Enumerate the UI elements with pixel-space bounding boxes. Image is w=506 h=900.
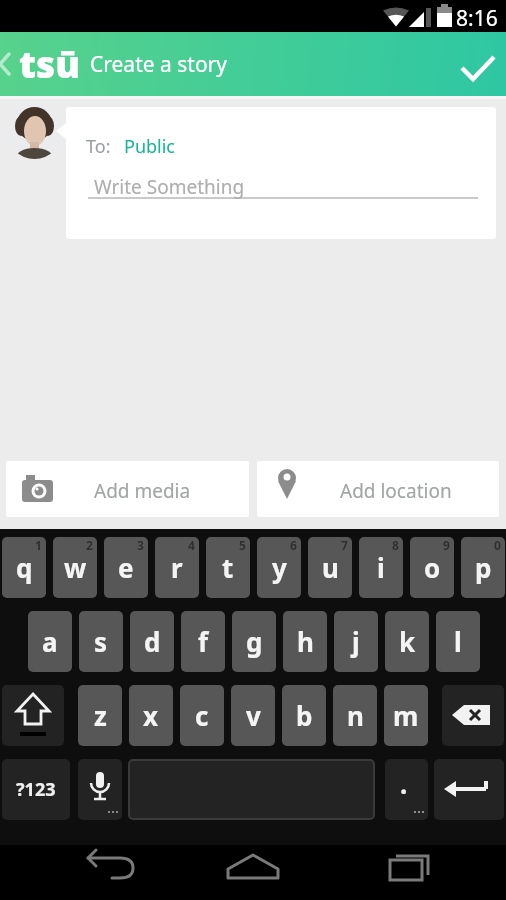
button[interactable]: p [461, 537, 505, 598]
staticText: p [475, 550, 492, 585]
button[interactable] [434, 759, 504, 820]
staticText: 4 [188, 537, 195, 553]
staticText: tsū [19, 38, 80, 88]
staticText: 8 [392, 537, 399, 553]
staticText: x [143, 698, 159, 733]
staticText: Public [124, 134, 176, 159]
staticText: w [64, 550, 87, 585]
button[interactable] [2, 685, 64, 746]
staticText: 0 [494, 537, 501, 553]
button[interactable]: Add location [257, 461, 499, 517]
staticText: o [424, 550, 441, 585]
button[interactable]: z [78, 685, 122, 746]
button[interactable] [223, 845, 283, 900]
staticText: f [198, 624, 209, 659]
staticText: 7 [341, 537, 348, 553]
staticText: h [297, 624, 314, 659]
button[interactable]: ?123 [2, 759, 70, 820]
button[interactable]: e [104, 537, 148, 598]
button[interactable]: l [436, 611, 480, 672]
button[interactable]: f [181, 611, 225, 672]
staticText: a [42, 624, 58, 659]
staticText: d [144, 624, 161, 659]
button[interactable]: u [308, 537, 352, 598]
button[interactable]: n [333, 685, 377, 746]
staticText: 3 [137, 537, 144, 553]
staticText: l [454, 624, 462, 659]
staticText: . [400, 766, 408, 801]
button[interactable]: Add media [6, 461, 249, 517]
staticText: z [94, 698, 107, 733]
button[interactable]: y [257, 537, 301, 598]
staticText: Create a story [90, 50, 228, 79]
button[interactable]: m [384, 685, 428, 746]
staticText: g [246, 624, 263, 659]
staticText: k [399, 624, 416, 659]
staticText: e [118, 550, 134, 585]
button[interactable]: Public [124, 134, 176, 159]
staticText: 9 [443, 537, 450, 553]
button[interactable] [7, 104, 62, 159]
staticText: y [272, 550, 287, 585]
button[interactable]: r [155, 537, 199, 598]
button[interactable]: j [334, 611, 378, 672]
button[interactable]: o [410, 537, 454, 598]
button[interactable]: t [206, 537, 250, 598]
button[interactable] [128, 759, 375, 820]
staticText: i [377, 550, 385, 585]
button[interactable]: v [231, 685, 275, 746]
staticText: Add media [94, 478, 191, 504]
button[interactable]: c [180, 685, 224, 746]
button[interactable]: g [232, 611, 276, 672]
button[interactable]: . [385, 759, 428, 820]
staticText: 8:16 [456, 4, 498, 33]
staticText: b [296, 698, 313, 733]
button[interactable] [450, 42, 506, 86]
button[interactable]: a [28, 611, 72, 672]
staticText: n [347, 698, 364, 733]
button[interactable]: b [282, 685, 326, 746]
button[interactable] [375, 845, 435, 900]
staticText: Add location [340, 478, 452, 504]
staticText: ?123 [16, 777, 56, 802]
staticText: v [246, 698, 261, 733]
button[interactable]: h [283, 611, 327, 672]
button[interactable]: w [53, 537, 97, 598]
button[interactable]: s [79, 611, 123, 672]
staticText: Write Something [94, 174, 245, 200]
staticText: t [222, 550, 234, 585]
staticText: q [16, 550, 33, 585]
staticText: 2 [86, 537, 93, 553]
staticText: r [171, 550, 183, 585]
button[interactable]: k [385, 611, 429, 672]
button[interactable]: q [2, 537, 46, 598]
button[interactable] [442, 685, 504, 746]
button[interactable] [80, 845, 140, 900]
staticText: 5 [239, 537, 246, 553]
staticText: c [195, 698, 209, 733]
button[interactable]: i [359, 537, 403, 598]
staticText: s [94, 624, 108, 659]
staticText: To: [86, 134, 111, 159]
staticText: j [352, 624, 360, 659]
staticText: m [393, 698, 419, 733]
button[interactable]: x [129, 685, 173, 746]
button[interactable] [78, 759, 122, 820]
staticText: 1 [35, 537, 42, 553]
staticText: u [322, 550, 339, 585]
button[interactable]: d [130, 611, 174, 672]
staticText: 6 [290, 537, 297, 553]
